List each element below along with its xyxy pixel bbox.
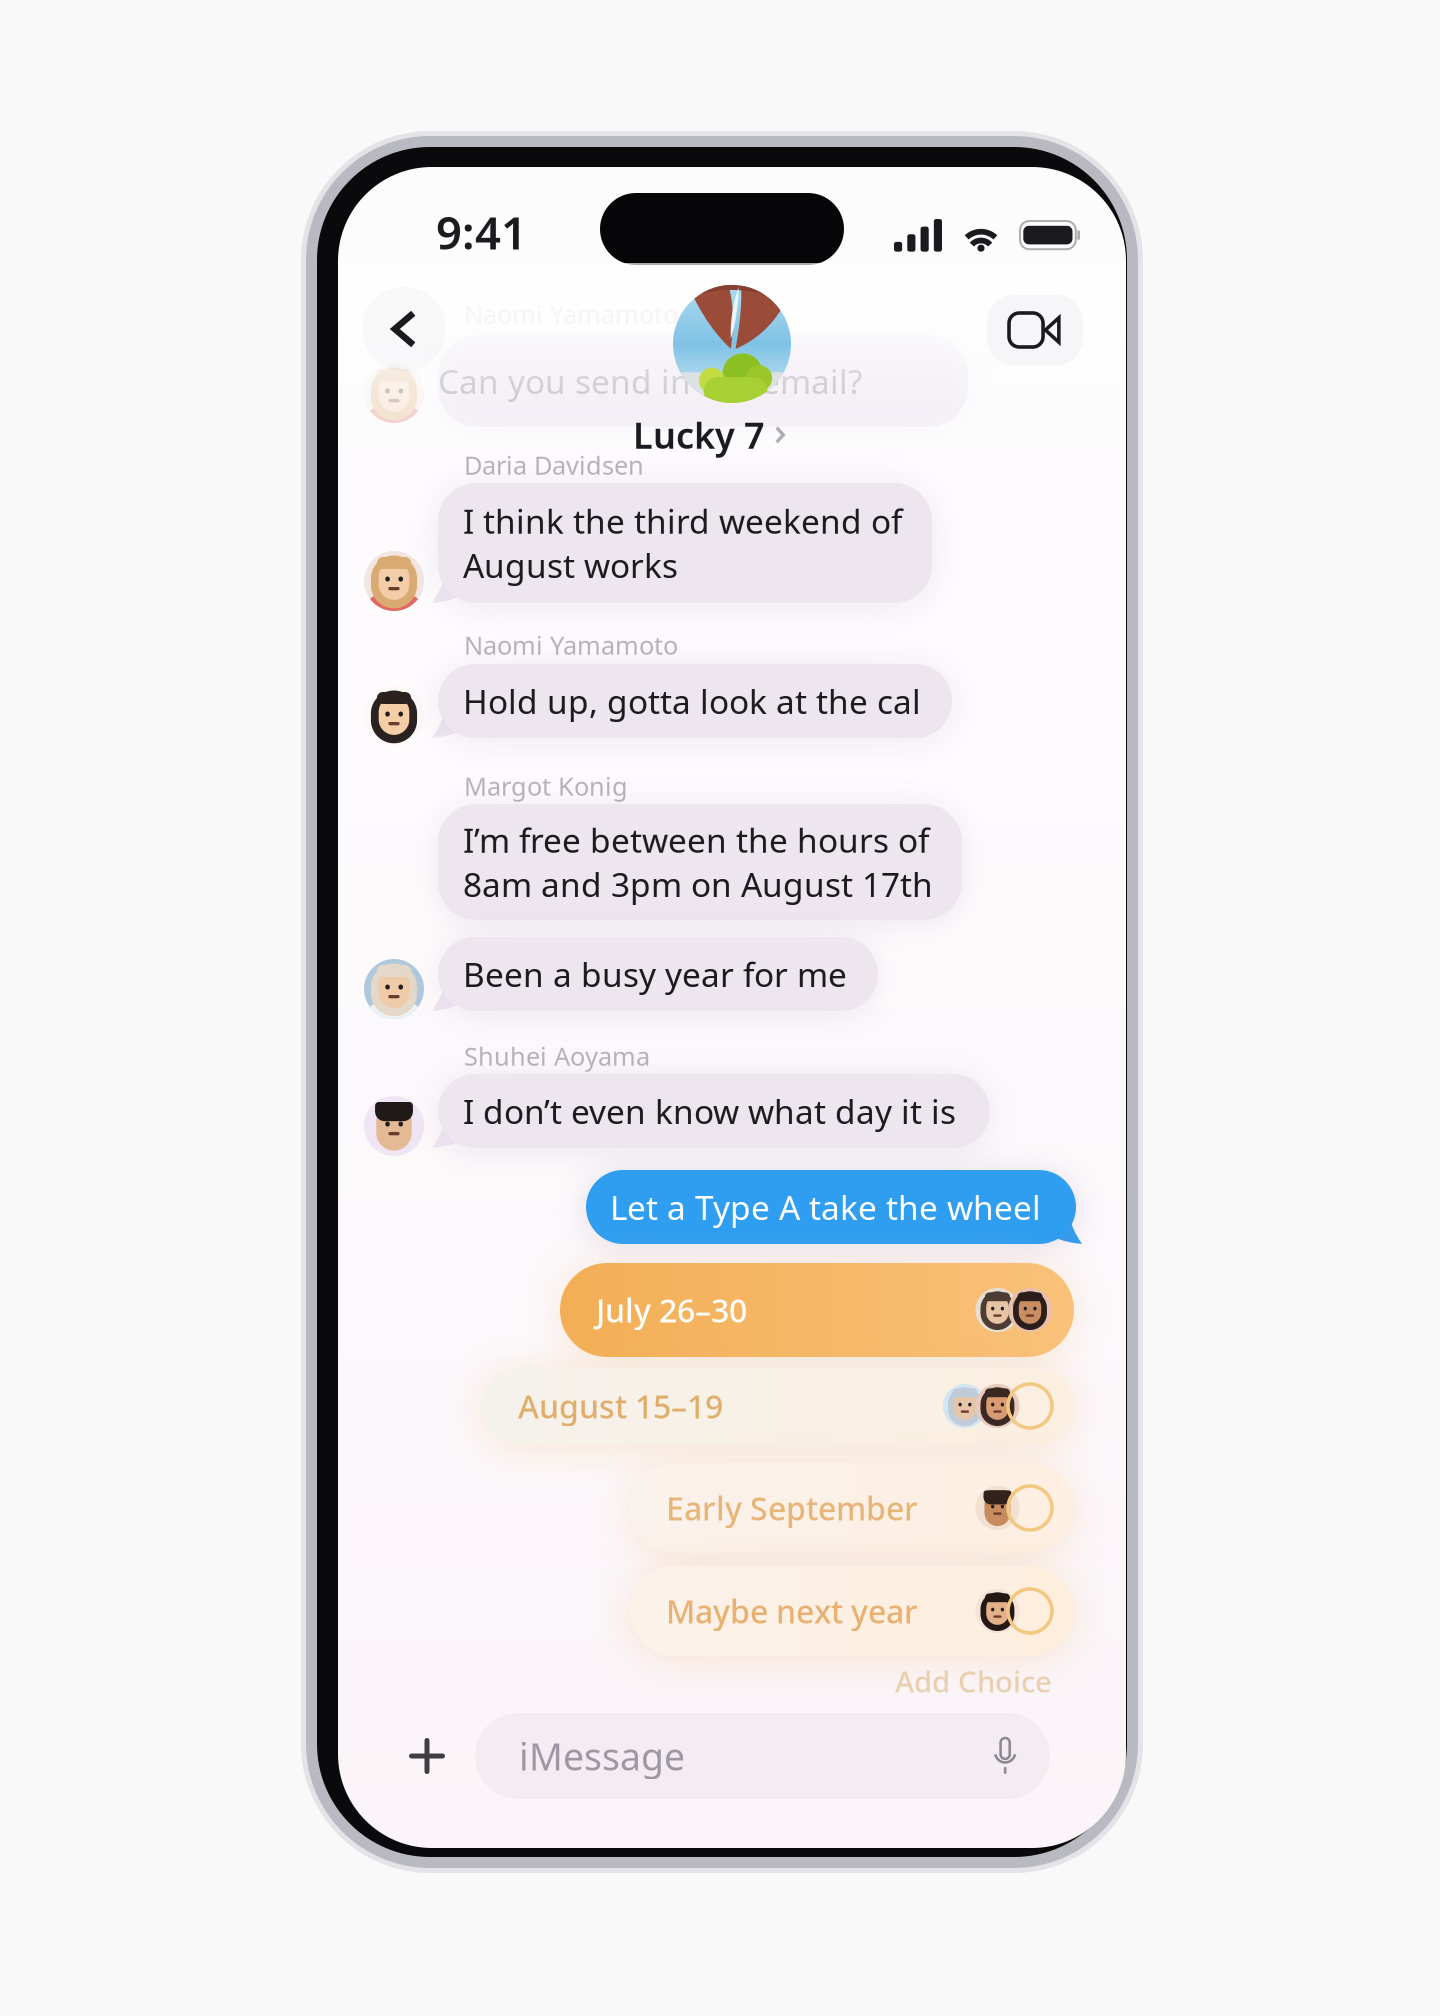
staticText: Shuhei Aoyama	[464, 1039, 650, 1073]
staticText: Been a busy year for me	[463, 952, 847, 996]
button[interactable]: Maybe next year	[630, 1566, 1074, 1656]
button[interactable]: Early September	[630, 1463, 1074, 1553]
staticText: July 26–30	[596, 1289, 747, 1331]
staticText: Daria Davidsen	[464, 448, 644, 482]
button[interactable]: August 15–19	[482, 1368, 1074, 1444]
staticText: I think the third weekend of August work…	[463, 499, 902, 587]
button[interactable]: July 26–30	[560, 1263, 1074, 1357]
staticText: Add Choice	[895, 1661, 1052, 1700]
button[interactable]: iMessage	[475, 1713, 1050, 1799]
staticText: Can you send in the email?	[438, 359, 862, 403]
staticText: August 15–19	[518, 1385, 723, 1427]
staticText: Naomi Yamamoto	[464, 628, 678, 662]
button[interactable]: FaceTime video call	[987, 295, 1083, 365]
button[interactable]: Add attachment	[385, 1713, 469, 1799]
button[interactable]: Add Choice	[895, 1661, 1052, 1700]
staticText: Hold up, gotta look at the cal	[463, 679, 921, 723]
staticText: Lucky 7	[633, 411, 765, 459]
staticText: Maybe next year	[666, 1590, 918, 1632]
staticText: Margot Konig	[464, 769, 628, 803]
staticText: Let a Type A take the wheel	[610, 1185, 1041, 1229]
staticText: iMessage	[519, 1731, 685, 1781]
staticText: I don’t even know what day it is	[463, 1089, 956, 1133]
staticText: Early September	[666, 1487, 918, 1529]
staticText: I’m free between the hours of 8am and 3p…	[463, 818, 933, 906]
button[interactable]: Lucky 7	[633, 285, 831, 451]
staticText: Naomi Yamamoto	[464, 297, 678, 331]
staticText: 9:41	[436, 202, 527, 262]
button[interactable]: Back	[362, 287, 446, 371]
